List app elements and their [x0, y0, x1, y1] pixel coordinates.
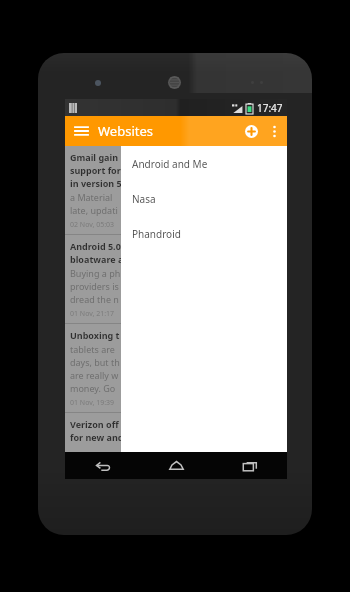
staticText: a Material [70, 191, 113, 203]
button[interactable]: Home [139, 452, 213, 479]
staticText: 17:47 [257, 101, 283, 115]
button[interactable]: Add website [239, 119, 263, 143]
button[interactable]: Nasa [121, 181, 287, 216]
staticText: dread the n [70, 293, 119, 305]
button[interactable]: Recent apps [213, 452, 287, 479]
button[interactable]: Android and Me [121, 146, 287, 181]
staticText: 01 Nov, 19:39 [70, 398, 115, 408]
staticText: are really w [70, 369, 119, 381]
staticText: Unboxing t [70, 329, 120, 341]
staticText: Websites [98, 122, 153, 140]
staticText: Android 5.0 [70, 240, 121, 252]
staticText: late, updati [70, 204, 118, 216]
staticText: Buying a ph [70, 267, 121, 279]
staticText: money. Go [70, 382, 116, 394]
staticText: bloatware a [70, 253, 124, 265]
staticText: in version 5 [70, 177, 122, 189]
button[interactable]: Phandroid [121, 216, 287, 251]
button[interactable]: Android 5.0 [65, 235, 287, 323]
button[interactable]: Unboxing t [65, 324, 287, 412]
staticText: support for [70, 164, 121, 176]
button[interactable]: Verizon off [65, 413, 287, 452]
staticText: days, but th [70, 356, 120, 368]
button[interactable]: Open navigation drawer [70, 120, 92, 142]
button[interactable]: Back [65, 452, 139, 479]
button[interactable]: Gmail gain [65, 146, 287, 234]
staticText: Nasa [132, 192, 156, 206]
staticText: tablets are [70, 343, 115, 355]
staticText: Phandroid [132, 227, 181, 241]
staticText: 02 Nov, 05:03 [70, 220, 115, 230]
staticText: Android and Me [132, 157, 208, 171]
staticText: for new and [70, 431, 124, 443]
staticText: providers is [70, 280, 119, 292]
button[interactable]: More options [263, 120, 285, 142]
staticText: Verizon off [70, 418, 119, 430]
staticText: Gmail gain [70, 151, 119, 163]
staticText: 01 Nov, 21:17 [70, 309, 115, 319]
